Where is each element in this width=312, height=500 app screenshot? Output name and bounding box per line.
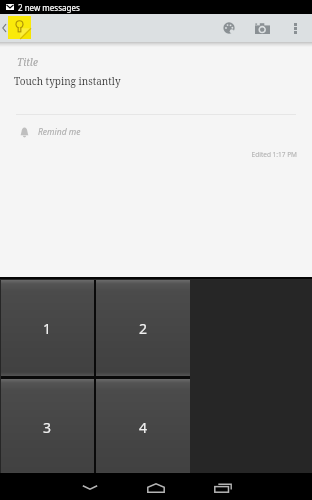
staticText: 3 xyxy=(43,418,52,437)
staticText: 2 new messages xyxy=(18,2,80,13)
button[interactable]: 4 xyxy=(96,379,190,476)
button[interactable]: Hide keyboard xyxy=(57,473,123,500)
staticText: 4 xyxy=(139,418,148,437)
button[interactable]: 3 xyxy=(1,379,94,476)
button[interactable]: Colour xyxy=(212,14,245,42)
button[interactable]: 1 xyxy=(1,280,94,376)
staticText: Edited 1:17 PM xyxy=(0,150,297,159)
staticText: 2 xyxy=(139,319,148,338)
button[interactable]: Camera xyxy=(245,14,279,42)
button[interactable]: Recent apps xyxy=(190,473,256,500)
button[interactable]: More options xyxy=(279,14,312,42)
button[interactable]: Keep xyxy=(8,16,31,39)
button[interactable]: Back xyxy=(0,14,8,42)
button[interactable]: 2 xyxy=(96,280,190,376)
staticText: 1 xyxy=(43,319,52,338)
staticText: Remind me xyxy=(38,126,81,138)
staticText: Title xyxy=(17,55,38,69)
staticText: Touch typing instantly xyxy=(14,74,121,88)
button[interactable]: Remind me xyxy=(0,122,312,142)
button[interactable]: Home xyxy=(123,473,189,500)
